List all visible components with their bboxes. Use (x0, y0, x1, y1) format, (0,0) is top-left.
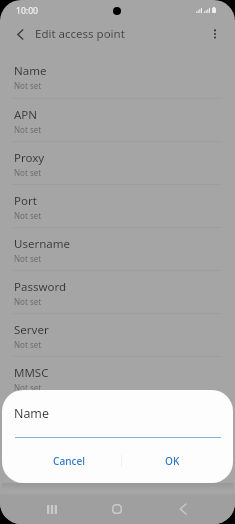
staticText: Not set (14, 167, 42, 178)
staticText: MMSC (14, 365, 49, 381)
staticText: Port (14, 193, 37, 209)
button[interactable]: Password (0, 271, 235, 313)
staticText: Not set (14, 382, 42, 393)
staticText: APN (14, 107, 38, 123)
staticText: OK (165, 454, 180, 468)
staticText: Cancel (53, 454, 85, 468)
staticText: Name (14, 63, 47, 79)
button[interactable]: Server (0, 314, 235, 356)
staticText: Name (14, 405, 49, 422)
staticText: Not set (14, 339, 42, 350)
button[interactable]: Home (99, 497, 135, 521)
staticText: 10:00 (16, 5, 38, 17)
staticText: Not set (14, 296, 42, 307)
staticText: Server (14, 322, 49, 338)
staticText: Not set (14, 124, 42, 135)
button[interactable]: Port (0, 185, 235, 227)
button[interactable]: APN (0, 99, 235, 141)
button[interactable]: Username (0, 228, 235, 270)
button[interactable]: Navigate up (5, 19, 35, 49)
staticText: Not set (14, 80, 42, 91)
button[interactable]: Recents (34, 497, 70, 521)
staticText: Not set (14, 210, 42, 221)
staticText: Edit access point (35, 26, 125, 42)
staticText: Password (14, 279, 67, 295)
staticText: Not set (14, 253, 42, 264)
button[interactable]: MMSC (0, 357, 235, 399)
button[interactable]: More options (200, 19, 230, 49)
button[interactable]: Proxy (0, 142, 235, 184)
button[interactable]: OK (132, 449, 212, 473)
staticText: Username (14, 236, 70, 252)
button[interactable]: Cancel (29, 449, 109, 473)
staticText: Proxy (14, 150, 45, 166)
button[interactable]: Back (165, 497, 201, 521)
button[interactable]: Name (0, 55, 235, 98)
